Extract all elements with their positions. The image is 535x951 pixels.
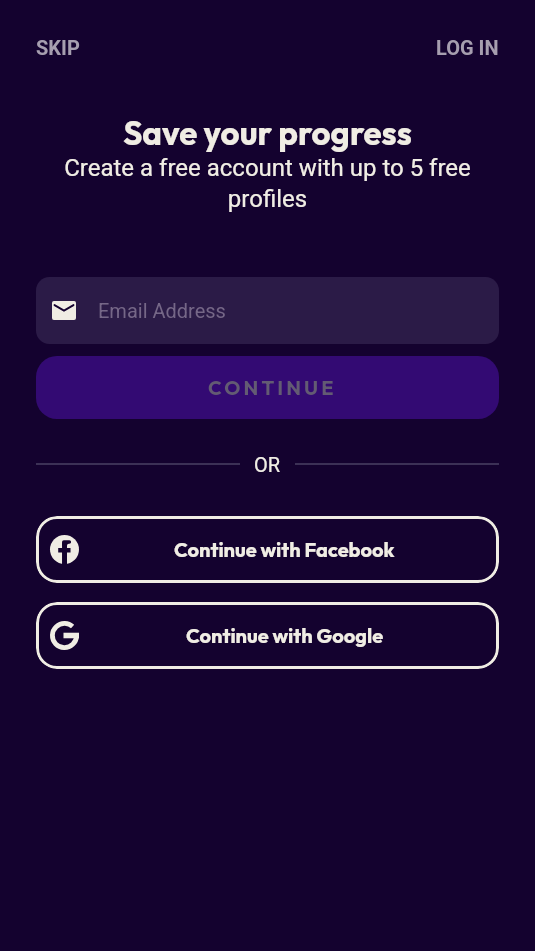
staticText: OR bbox=[254, 453, 281, 475]
staticText: CONTINUE bbox=[208, 375, 337, 400]
other: Facebook bbox=[50, 535, 79, 564]
other: Email bbox=[52, 301, 76, 320]
staticText: Email Address bbox=[98, 299, 226, 322]
staticText: LOG IN bbox=[436, 36, 499, 59]
button[interactable]: SKIP bbox=[0, 22, 116, 73]
staticText: SKIP bbox=[36, 36, 80, 59]
button[interactable]: Google bbox=[36, 602, 499, 669]
button[interactable]: Facebook bbox=[36, 516, 499, 583]
button[interactable]: Email bbox=[36, 277, 499, 344]
staticText: Continue with Facebook bbox=[174, 537, 395, 562]
staticText: Save your progress bbox=[0, 112, 535, 154]
staticText: Create a free account with up to 5 free … bbox=[55, 154, 480, 213]
staticText: Continue with Google bbox=[186, 623, 384, 648]
button[interactable]: LOG IN bbox=[400, 22, 535, 73]
button[interactable]: CONTINUE bbox=[36, 356, 499, 419]
other: Google bbox=[50, 621, 79, 650]
